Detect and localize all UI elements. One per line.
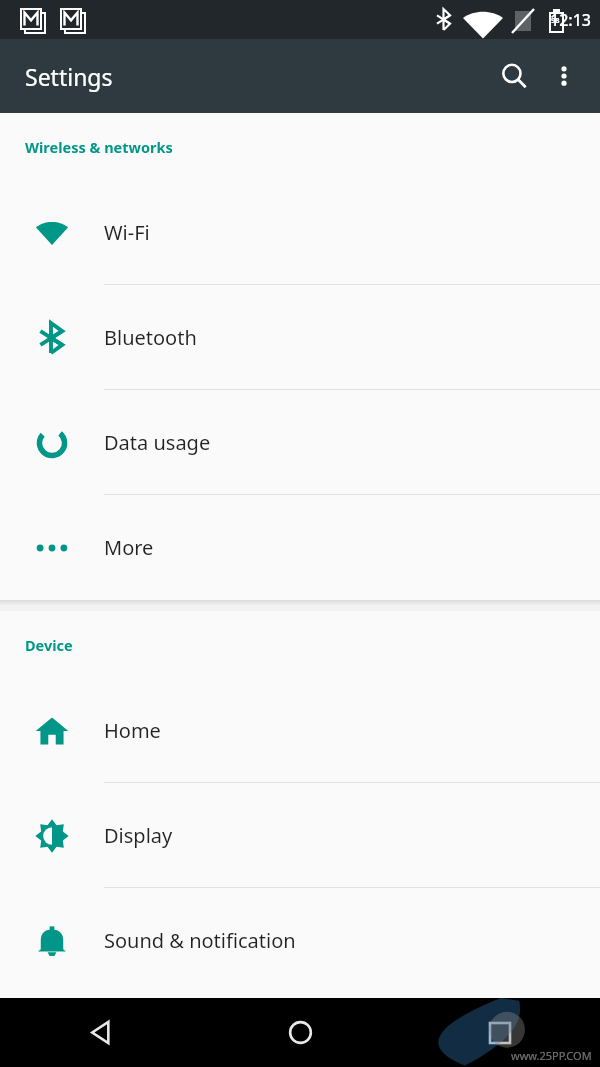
staticText: Settings (25, 61, 113, 92)
button[interactable]: Recent apps (400, 998, 600, 1067)
staticText: More (104, 534, 154, 561)
staticText: Device (25, 635, 73, 655)
staticText: Bluetooth (104, 324, 197, 351)
button[interactable]: Back (0, 998, 200, 1067)
staticText: 12:13 (550, 9, 591, 31)
staticText: Wireless & networks (25, 137, 173, 157)
staticText: Display (104, 822, 173, 849)
button[interactable]: More options (540, 52, 588, 100)
button[interactable]: Bluetooth (0, 285, 600, 390)
staticText: Home (104, 717, 161, 744)
staticText: Data usage (104, 429, 211, 456)
button[interactable]: More (0, 495, 600, 600)
staticText: www.25PP.COM (511, 1048, 592, 1063)
button[interactable]: Sound & notification (0, 888, 600, 993)
staticText: 98 (551, 15, 560, 25)
staticText: Sound & notification (104, 927, 296, 954)
button[interactable]: Search (490, 52, 538, 100)
button[interactable]: Home (0, 678, 600, 783)
button[interactable]: Home (200, 998, 400, 1067)
button[interactable]: Display (0, 783, 600, 888)
button[interactable]: Data usage (0, 390, 600, 495)
staticText: Wi-Fi (104, 219, 150, 246)
button[interactable]: Wi-Fi (0, 180, 600, 285)
